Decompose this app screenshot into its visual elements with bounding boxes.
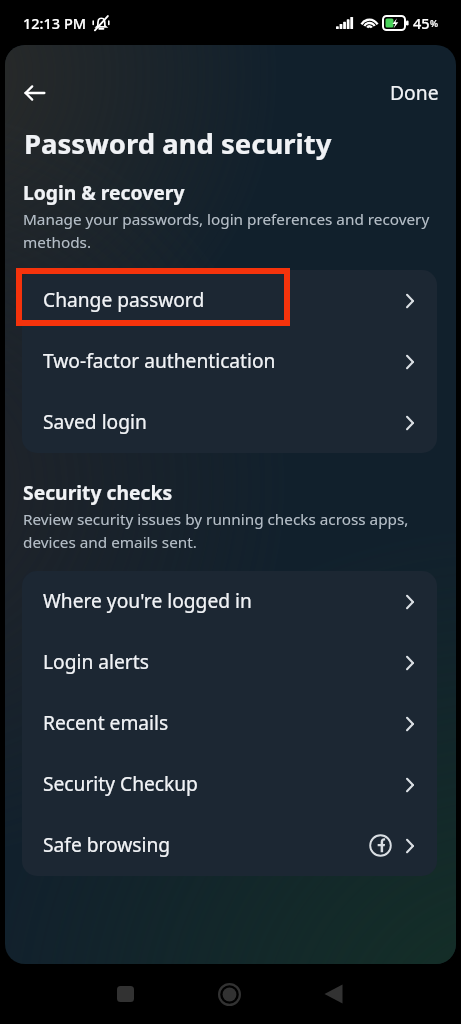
button[interactable]: Home — [192, 970, 266, 1018]
button[interactable]: Back — [296, 970, 370, 1018]
button[interactable]: Recent apps — [88, 970, 162, 1018]
button[interactable]: Login alerts — [22, 632, 437, 693]
button[interactable]: Saved login — [22, 392, 437, 453]
staticText: Review security issues by running checks… — [23, 509, 435, 553]
staticText: Saved login — [43, 408, 147, 434]
staticText: Where you're logged in — [43, 587, 252, 613]
button[interactable]: Back — [13, 71, 57, 115]
staticText: Security Checkup — [43, 770, 198, 796]
button[interactable]: Where you're logged in — [22, 571, 437, 632]
button[interactable]: Change password — [22, 270, 437, 331]
button[interactable]: Two-factor authentication — [22, 331, 437, 392]
staticText: 12:13 PM — [23, 13, 87, 33]
staticText: Change password — [43, 286, 205, 312]
staticText: 45 — [413, 13, 430, 33]
staticText: Recent emails — [43, 709, 169, 735]
staticText: Done — [390, 79, 439, 105]
button[interactable]: Done — [382, 72, 447, 112]
staticText: Safe browsing — [43, 831, 171, 857]
button[interactable]: Safe browsing — [22, 815, 437, 876]
staticText: Security checks — [23, 479, 173, 505]
button[interactable]: Security Checkup — [22, 754, 437, 815]
staticText: Login alerts — [43, 648, 149, 674]
button[interactable]: Recent emails — [22, 693, 437, 754]
staticText: % — [430, 17, 439, 30]
staticText: Manage your passwords, login preferences… — [23, 209, 435, 253]
staticText: Login & recovery — [23, 179, 185, 205]
staticText: Two-factor authentication — [43, 347, 276, 373]
staticText: Password and security — [24, 125, 332, 162]
